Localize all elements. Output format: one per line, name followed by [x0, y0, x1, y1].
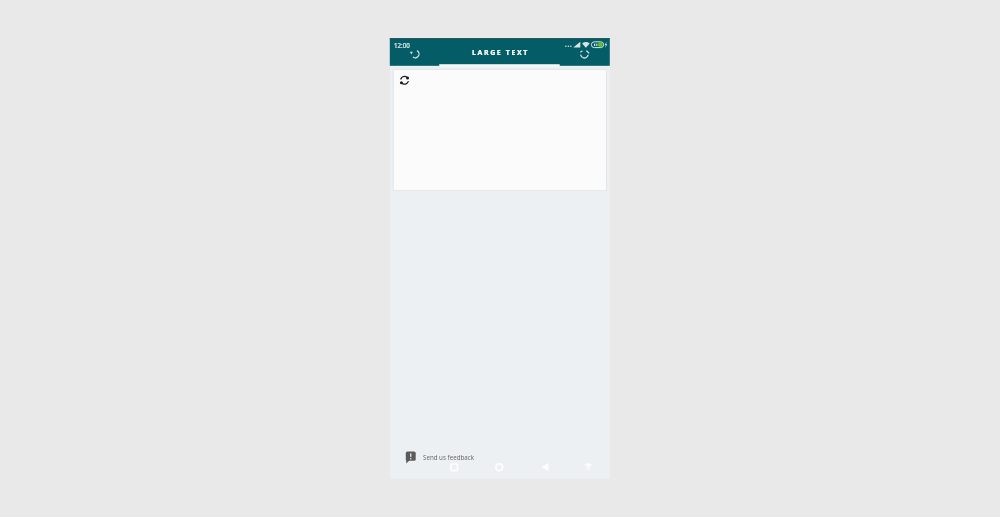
- staticText: LARGE TEXT: [472, 48, 529, 56]
- staticText: 12:00: [394, 41, 410, 49]
- staticText: Send us feedback: [423, 453, 474, 461]
